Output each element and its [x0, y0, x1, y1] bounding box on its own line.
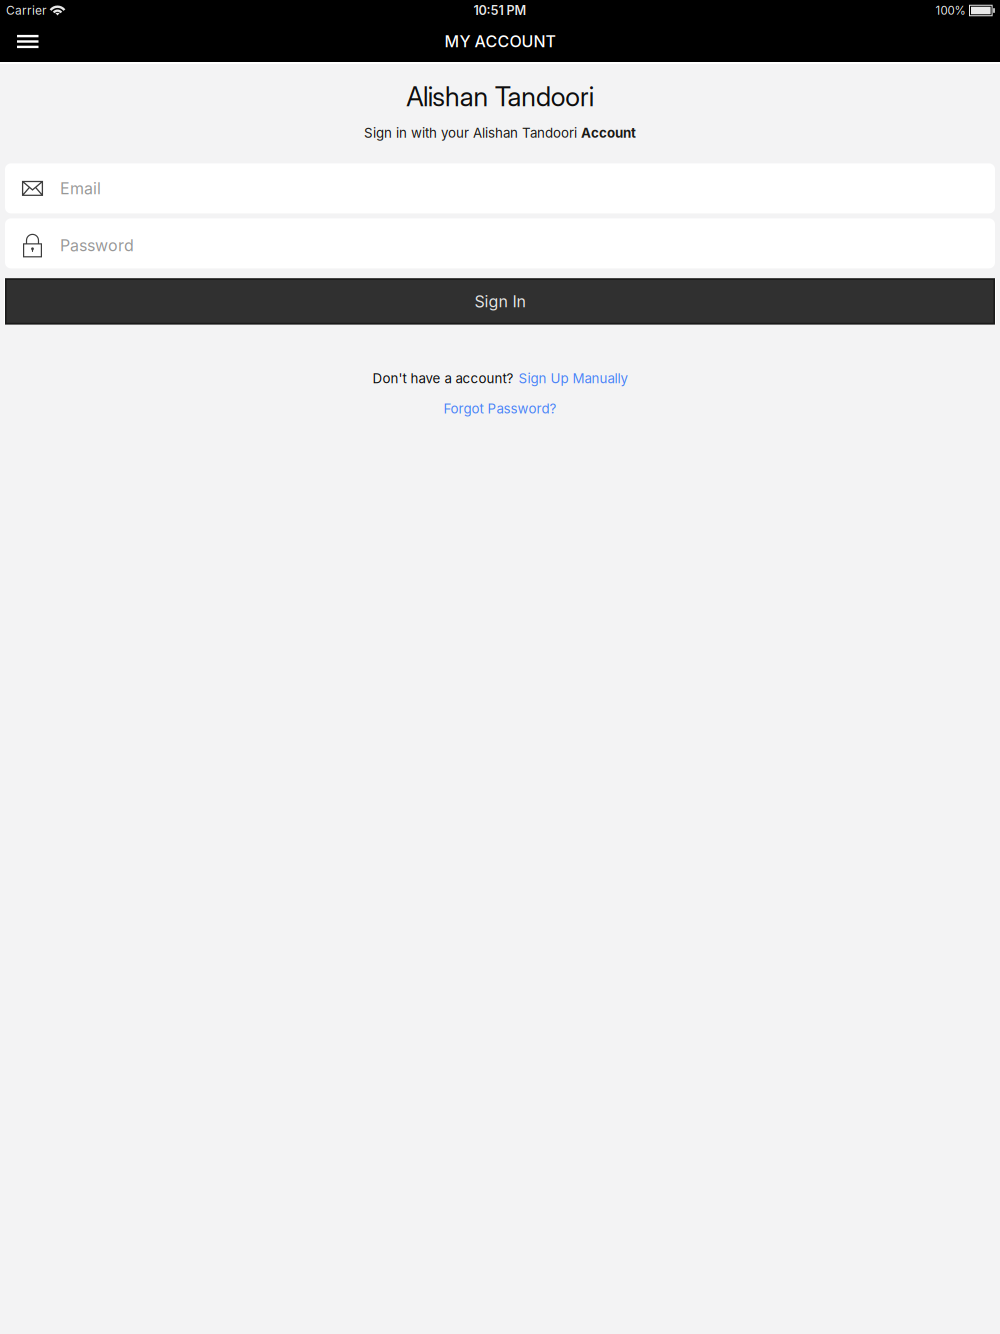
- staticText: Sign Up Manually: [518, 370, 627, 386]
- staticText: Carrier: [6, 3, 47, 18]
- staticText: 10:51 PM: [473, 3, 526, 18]
- staticText: Sign In: [474, 292, 525, 311]
- staticText: Email: [60, 179, 101, 198]
- staticText: Alishan Tandoori: [406, 80, 594, 113]
- staticText: MY ACCOUNT: [444, 32, 555, 51]
- staticText: Don't have a account?: [372, 370, 513, 386]
- staticText: Sign in with your Alishan Tandoori Accou…: [364, 125, 636, 141]
- button[interactable]: Forgot Password?: [443, 400, 556, 417]
- staticText: 100%: [935, 4, 965, 17]
- button[interactable]: Password: [5, 218, 995, 268]
- button[interactable]: Sign In: [4, 278, 996, 324]
- staticText: Password: [60, 236, 134, 255]
- staticText: Forgot Password?: [443, 400, 556, 417]
- button[interactable]: Email: [5, 163, 995, 213]
- button[interactable]: Sign Up Manually: [513, 370, 627, 386]
- button[interactable]: Menu: [7, 22, 48, 61]
